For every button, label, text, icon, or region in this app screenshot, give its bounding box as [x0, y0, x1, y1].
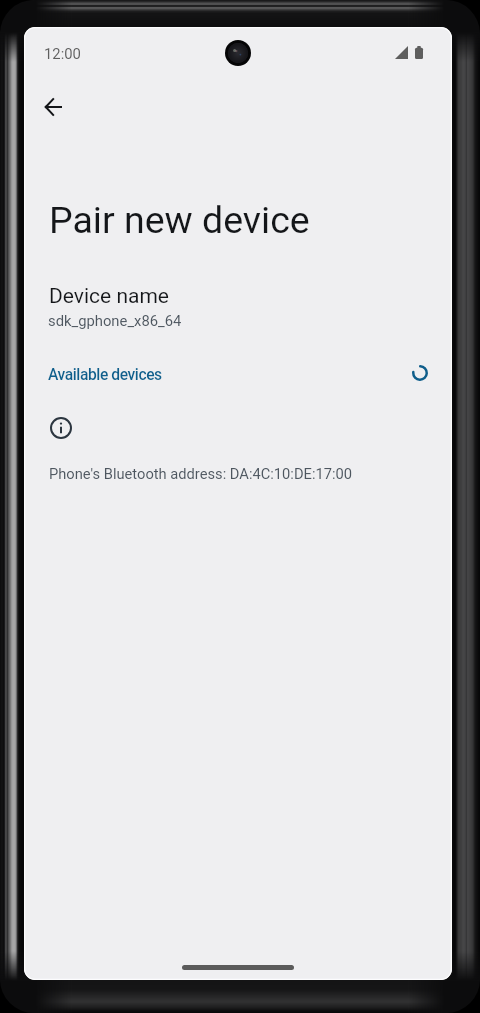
- other: Scanning for devices: [411, 364, 428, 381]
- other: Information: [50, 417, 72, 439]
- button[interactable]: Available devices: [36, 354, 440, 394]
- button[interactable]: Back: [29, 83, 77, 131]
- staticText: Phone's Bluetooth address: DA:4C:10:DE:1…: [49, 465, 353, 482]
- button[interactable]: Device name: [24, 274, 452, 344]
- staticText: sdk_gphone_x86_64: [48, 312, 182, 329]
- staticText: 12:00: [44, 45, 81, 62]
- staticText: Device name: [49, 284, 169, 309]
- staticText: Pair new device: [49, 198, 310, 242]
- staticText: Available devices: [48, 366, 162, 384]
